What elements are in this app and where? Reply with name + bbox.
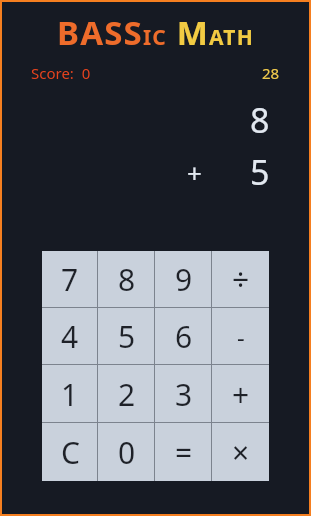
button[interactable]: 6 bbox=[155, 308, 212, 365]
staticText: 6 bbox=[175, 316, 193, 357]
staticText: 1 bbox=[61, 374, 79, 415]
staticText: + bbox=[187, 155, 202, 190]
staticText: 8 bbox=[118, 259, 136, 300]
button[interactable]: 0 bbox=[98, 423, 155, 481]
button[interactable]: = bbox=[155, 423, 212, 481]
staticText: 0 bbox=[118, 432, 136, 473]
button[interactable]: 4 bbox=[42, 308, 98, 365]
button[interactable]: × bbox=[212, 423, 269, 481]
staticText: 4 bbox=[61, 316, 79, 357]
button[interactable]: 7 bbox=[42, 251, 98, 308]
staticText: 9 bbox=[175, 259, 193, 300]
staticText: BASSIC MATH bbox=[57, 10, 254, 55]
staticText: 2 bbox=[118, 374, 136, 415]
staticText: 8 bbox=[250, 97, 270, 143]
staticText: 7 bbox=[61, 259, 79, 300]
staticText: × bbox=[232, 432, 250, 473]
button[interactable]: 8 bbox=[98, 251, 155, 308]
staticText: - bbox=[237, 320, 245, 353]
staticText: = bbox=[175, 432, 193, 473]
button[interactable]: + bbox=[212, 365, 269, 423]
button[interactable]: C bbox=[42, 423, 98, 481]
button[interactable]: 5 bbox=[98, 308, 155, 365]
button[interactable]: ÷ bbox=[212, 251, 269, 308]
button[interactable]: 3 bbox=[155, 365, 212, 423]
button[interactable]: 1 bbox=[42, 365, 98, 423]
staticText: ÷ bbox=[232, 259, 250, 300]
button[interactable]: 9 bbox=[155, 251, 212, 308]
staticText: 5 bbox=[118, 316, 136, 357]
button[interactable]: - bbox=[212, 308, 269, 365]
staticText: 28 bbox=[262, 63, 280, 83]
staticText: 3 bbox=[175, 374, 193, 415]
staticText: 5 bbox=[250, 149, 270, 195]
staticText: + bbox=[232, 374, 250, 415]
staticText: C bbox=[61, 432, 80, 473]
staticText: Score: 0 bbox=[31, 63, 91, 83]
button[interactable]: 2 bbox=[98, 365, 155, 423]
